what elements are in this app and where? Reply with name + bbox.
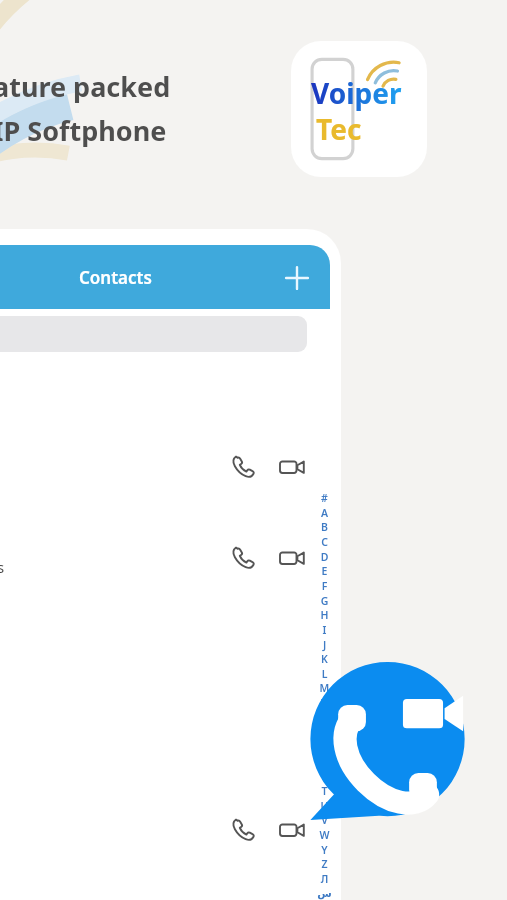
staticText: W [314,828,335,842]
staticText: A [314,506,335,520]
staticText: Q [314,740,335,754]
staticText: Voiper [311,74,402,112]
button[interactable]: Video call [274,540,310,576]
staticText: G [314,594,335,608]
staticText: T [314,784,335,798]
staticText: Л [314,872,335,886]
staticText: Tec [316,110,362,148]
staticText: K [314,652,335,666]
staticText: R [314,755,335,769]
staticText: Z [314,857,335,871]
staticText: # [314,491,335,505]
button[interactable]: Alphabet index [314,491,335,900]
staticText: Contacts [79,266,152,289]
button[interactable]: Add contact [276,257,318,299]
staticText: M [314,681,335,695]
staticText: N [314,696,335,710]
staticText: B [314,520,335,534]
button[interactable]: Call [225,449,261,485]
staticText: S [314,769,335,783]
button[interactable]: Contacts [0,245,330,309]
button[interactable]: New video call [308,660,468,813]
staticText: H [314,608,335,622]
staticText: P [314,725,335,739]
staticText: V [314,813,335,827]
staticText: E [314,564,335,578]
button[interactable]: Call [225,540,261,576]
button[interactable]: Video call [274,449,310,485]
staticText: IP Softphone [0,112,167,149]
staticText: ature packed [0,68,171,105]
staticText: O [314,711,335,725]
staticText: D [314,550,335,564]
button[interactable]: Video call [274,812,310,848]
button[interactable]: VoiperTec [291,41,427,177]
staticText: L [314,667,335,681]
staticText: U [314,799,335,813]
staticText: F [314,579,335,593]
staticText: C [314,535,335,549]
staticText: Y [314,843,335,857]
button[interactable]: Call [225,812,261,848]
staticText: س [314,887,335,900]
staticText: I [314,623,335,637]
staticText: s [0,557,5,577]
staticText: J [314,638,335,652]
